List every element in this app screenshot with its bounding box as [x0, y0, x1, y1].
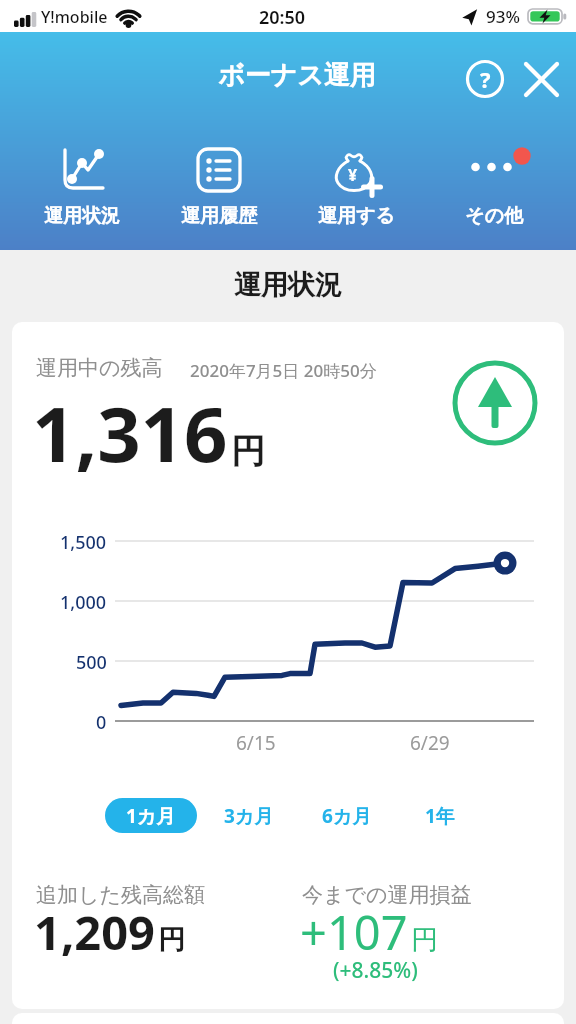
- button[interactable]: 6カ月: [310, 798, 383, 833]
- staticText: 20:50: [259, 5, 306, 30]
- staticText: 1年: [425, 803, 455, 829]
- staticText: 今までの運用損益: [302, 882, 472, 908]
- staticText: 運用状況: [234, 268, 342, 302]
- staticText: ボーナス運用: [218, 59, 376, 92]
- staticText: 1カ月: [126, 803, 176, 829]
- staticText: 1,209: [34, 900, 155, 964]
- staticText: ?: [480, 64, 491, 94]
- staticText: 1,316: [32, 381, 228, 485]
- staticText: 93%: [486, 5, 520, 28]
- staticText: 運用中の残高: [36, 355, 163, 381]
- staticText: Y!mobile: [41, 6, 108, 28]
- staticText: 円: [231, 430, 265, 473]
- staticText: 6/29: [410, 730, 450, 756]
- staticText: 1,500: [60, 530, 107, 555]
- staticText: 6/15: [236, 730, 276, 756]
- button[interactable]: 運用履歴: [150, 146, 287, 228]
- button[interactable]: その他: [425, 146, 563, 228]
- staticText: 500: [76, 650, 107, 675]
- staticText: 3カ月: [224, 803, 274, 829]
- button[interactable]: [519, 57, 563, 101]
- staticText: 0: [96, 710, 107, 735]
- button[interactable]: 3カ月: [212, 798, 285, 833]
- staticText: 円: [158, 923, 185, 957]
- staticText: 円: [411, 923, 438, 957]
- button[interactable]: ¥: [287, 146, 425, 228]
- button[interactable]: 1年: [410, 798, 470, 833]
- button[interactable]: 運用状況: [13, 146, 150, 228]
- staticText: 運用する: [318, 204, 395, 228]
- staticText: 追加した残高総額: [36, 882, 205, 908]
- staticText: 運用状況: [44, 204, 120, 228]
- button[interactable]: 1カ月: [105, 798, 197, 833]
- staticText: 6カ月: [322, 803, 372, 829]
- button[interactable]: ?: [464, 58, 506, 100]
- staticText: 1,000: [60, 590, 107, 615]
- staticText: +107: [300, 900, 408, 964]
- staticText: 運用履歴: [181, 204, 257, 228]
- staticText: その他: [465, 204, 523, 228]
- staticText: (+8.85%): [333, 956, 418, 985]
- staticText: ¥: [348, 164, 358, 186]
- staticText: 2020年7月5日 20時50分: [190, 359, 377, 382]
